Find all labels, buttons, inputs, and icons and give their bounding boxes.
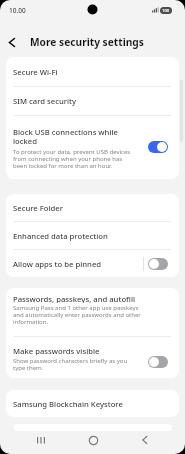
button[interactable]: Allow apps to be pinned	[6, 250, 179, 277]
staticText: SIM card security	[13, 96, 77, 106]
staticText: and automatically enter passwords and ot…	[13, 311, 141, 318]
staticText: Allow apps to be pinned	[13, 259, 102, 269]
button[interactable]	[148, 356, 168, 368]
staticText: been locked for more than an hour.	[13, 162, 113, 169]
staticText: More security settings	[30, 35, 144, 49]
staticText: 10.00	[9, 6, 26, 15]
button[interactable]	[26, 432, 56, 448]
button[interactable]: Samsung Blockchain Keystore	[6, 390, 179, 417]
button[interactable]	[130, 432, 160, 448]
staticText: Passwords, passkeys, and autofill	[13, 294, 136, 303]
button[interactable]: Block USB connections while	[6, 116, 179, 179]
staticText: Make passwords visible	[13, 346, 100, 355]
staticText: type them.	[13, 364, 44, 371]
button[interactable]: SIM card security	[6, 87, 179, 115]
button[interactable]: Passwords, passkeys, and autofill	[6, 288, 179, 336]
button[interactable]: Enhanced data protection	[6, 222, 179, 249]
button[interactable]	[148, 141, 168, 153]
button[interactable]	[0, 30, 24, 54]
button[interactable]	[148, 258, 168, 270]
staticText: Samsung Blockchain Keystore	[13, 399, 123, 409]
button[interactable]: Secure Wi-Fi	[6, 57, 179, 86]
button[interactable]	[78, 432, 108, 448]
staticText: Show password characters briefly as you	[13, 357, 128, 364]
staticText: from connecting when your phone has	[13, 155, 123, 162]
staticText: Secure Folder	[13, 203, 64, 213]
button[interactable]: Make passwords visible	[6, 337, 179, 378]
staticText: information.	[13, 318, 49, 325]
staticText: Samsung Pass and 1 other app use passkey…	[13, 304, 139, 311]
staticText: Block USB connections while	[13, 127, 118, 136]
staticText: 100	[162, 8, 170, 14]
staticText: To protect your data, prevent USB device…	[13, 148, 131, 155]
staticText: Secure Wi-Fi	[13, 67, 58, 77]
staticText: locked	[13, 136, 38, 145]
button[interactable]: Secure Folder	[6, 194, 179, 221]
staticText: Enhanced data protection	[13, 231, 108, 241]
